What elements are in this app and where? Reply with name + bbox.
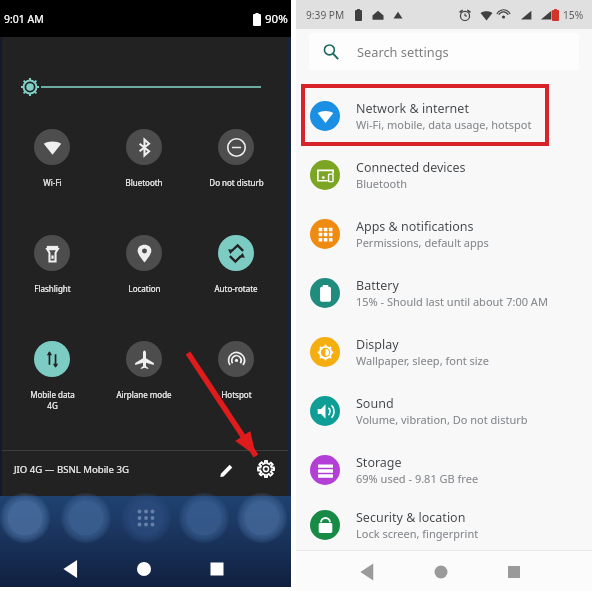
staticText: Security & location	[356, 509, 466, 526]
staticText: JIO 4G — BSNL Mobile 3G	[14, 463, 129, 476]
button[interactable]: Airplane mode	[98, 340, 190, 446]
staticText: Display	[356, 336, 399, 353]
button[interactable]: Flashlight	[6, 234, 98, 340]
staticText: Hotspot	[221, 389, 252, 400]
button[interactable]: Auto-rotate	[190, 234, 282, 340]
button[interactable]: Mobile data	[6, 340, 98, 446]
staticText: Location	[128, 283, 161, 294]
staticText: Storage	[356, 454, 402, 471]
staticText: Mobile data	[30, 389, 75, 400]
staticText: Network & internet	[356, 100, 469, 117]
staticText: 90%	[265, 11, 288, 27]
staticText: Auto-rotate	[214, 283, 258, 294]
button[interactable]: Location	[98, 234, 190, 340]
staticText: 15%	[563, 8, 584, 22]
staticText: 15% - Should last until about 7:00 AM	[356, 294, 548, 309]
staticText: Wallpaper, sleep, font size	[356, 353, 489, 368]
button[interactable]: Do not disturb	[190, 128, 282, 234]
button[interactable]: Wi-Fi	[6, 128, 98, 234]
button[interactable]: Search settings	[309, 33, 579, 70]
staticText: 9:01 AM	[4, 12, 44, 26]
staticText: Battery	[356, 277, 399, 294]
button[interactable]: Apps & notifications	[296, 204, 592, 263]
button[interactable]: Edit	[215, 457, 239, 481]
staticText: Flashlight	[34, 283, 71, 294]
button[interactable]: Battery	[296, 263, 592, 322]
staticText: Apps & notifications	[356, 218, 474, 235]
staticText: Wi-Fi	[43, 177, 62, 188]
staticText: Volume, vibration, Do not disturb	[356, 412, 528, 427]
staticText: 9:39 PM	[306, 8, 345, 22]
button[interactable]: Storage	[296, 440, 592, 499]
staticText: Bluetooth	[356, 176, 408, 191]
staticText: Permissions, default apps	[356, 235, 489, 250]
button[interactable]: Security & location	[296, 499, 592, 550]
button[interactable]: Connected devices	[296, 145, 592, 204]
button[interactable]: Network & internet	[296, 86, 592, 145]
staticText: Connected devices	[356, 159, 466, 176]
staticText: Do not disturb	[209, 177, 264, 188]
button[interactable]: Display	[296, 322, 592, 381]
button[interactable]: Settings	[254, 457, 278, 481]
staticText: Wi-Fi, mobile, data usage, hotspot	[356, 117, 532, 132]
staticText: Airplane mode	[116, 389, 172, 400]
staticText: Search settings	[357, 43, 449, 60]
button[interactable]: Hotspot	[190, 340, 282, 446]
button[interactable]: Sound	[296, 381, 592, 440]
staticText: Sound	[356, 395, 394, 412]
button[interactable]: Bluetooth	[98, 128, 190, 234]
staticText: 69% used - 9.81 GB free	[356, 471, 479, 486]
staticText: Lock screen, fingerprint	[356, 526, 479, 541]
staticText: Bluetooth	[125, 177, 163, 188]
staticText: 4G	[47, 400, 58, 411]
